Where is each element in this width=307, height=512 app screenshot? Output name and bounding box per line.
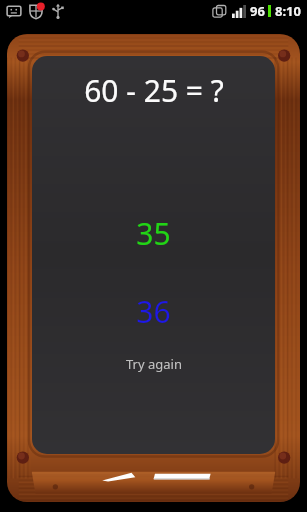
- button[interactable]: 35: [32, 211, 275, 255]
- staticText: 36: [136, 291, 171, 332]
- button[interactable]: 36: [32, 289, 275, 333]
- button[interactable]: Try again: [32, 351, 275, 377]
- staticText: 60 - 25 = ?: [84, 70, 224, 111]
- staticText: 8:10: [275, 2, 301, 20]
- staticText: 96: [250, 2, 265, 20]
- staticText: 35: [136, 213, 171, 254]
- staticText: Try again: [126, 355, 182, 373]
